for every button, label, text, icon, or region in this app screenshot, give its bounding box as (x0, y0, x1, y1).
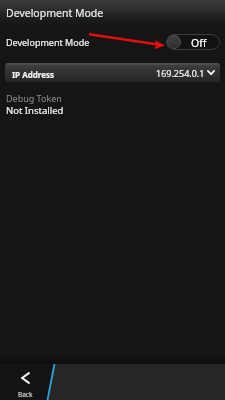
button[interactable]: Back (0, 364, 50, 400)
button[interactable]: Development Mode (0, 28, 225, 57)
staticText: Development Mode (6, 36, 90, 48)
staticText: Not Installed (6, 104, 64, 117)
button[interactable]: Development Mode toggle, Off (166, 34, 220, 50)
staticText: Development Mode (6, 6, 104, 20)
staticText: Back (18, 390, 33, 399)
staticText: Off (191, 36, 207, 50)
button[interactable]: IP Address (5, 63, 220, 83)
staticText: 169.254.0.1 (156, 67, 205, 79)
staticText: IP Address (12, 69, 55, 80)
staticText: Debug Token (6, 92, 62, 104)
